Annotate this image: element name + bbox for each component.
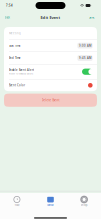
staticText: Notify 10 minutes before [9,73,33,75]
staticText: Today [14,204,19,206]
staticText: Save [89,16,95,19]
staticText: Event Color [9,83,25,87]
staticText: Settings [81,204,88,206]
staticText: 9:00 AM [79,44,91,47]
staticText: Back [5,16,10,19]
staticText: Meeting [9,31,21,35]
button[interactable]: End Time [4,52,97,64]
button[interactable]: Settings [67,193,101,209]
button[interactable]: Start Time [4,40,97,52]
staticText: Edit Event [40,15,60,20]
staticText: End Time [9,56,21,60]
button[interactable]: Save [85,13,101,22]
button[interactable]: Back [0,13,14,22]
button[interactable]: Calendar [34,193,67,209]
button[interactable]: Event Color [4,79,97,91]
staticText: Enable Event Alert [9,68,34,72]
staticText: Start Time [9,44,21,47]
button[interactable]: Meeting [4,27,97,39]
staticText: Delete Event [41,98,59,102]
staticText: 9:45 AM [79,56,91,60]
staticText: Calendar [47,204,54,206]
staticText: 7:54 [6,4,13,7]
button[interactable]: Enable Event Alert [4,64,97,79]
button[interactable]: Delete Event [4,94,97,107]
button[interactable]: Today [0,193,34,209]
